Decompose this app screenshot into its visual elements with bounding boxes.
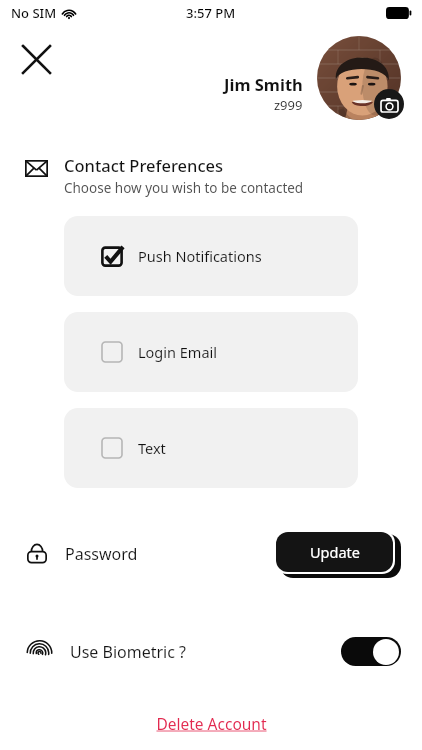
staticText: Push Notifications	[138, 246, 262, 266]
button[interactable]: Change profile photo	[317, 36, 401, 120]
staticText: Update	[310, 542, 360, 562]
staticText: z999	[274, 96, 303, 114]
staticText: Use Biometric ?	[70, 641, 187, 663]
button[interactable]: Use Biometric toggle, on	[341, 637, 401, 666]
staticText: Contact Preferences	[64, 154, 223, 176]
staticText: Text	[138, 438, 166, 458]
button[interactable]: Close	[14, 37, 58, 81]
staticText: Delete Account	[156, 713, 267, 734]
staticText: Password	[65, 543, 138, 565]
staticText: Choose how you wish to be contacted	[64, 179, 304, 197]
button[interactable]: Update	[274, 530, 401, 578]
staticText: No SIM	[11, 4, 57, 22]
staticText: 3:57 PM	[186, 4, 236, 22]
button[interactable]: Text	[64, 408, 358, 488]
button[interactable]: Push Notifications	[64, 216, 358, 296]
staticText: Login Email	[138, 342, 217, 362]
staticText: Jim Smith	[224, 73, 303, 95]
button[interactable]: Delete Account	[146, 709, 277, 738]
button[interactable]: Login Email	[64, 312, 358, 392]
